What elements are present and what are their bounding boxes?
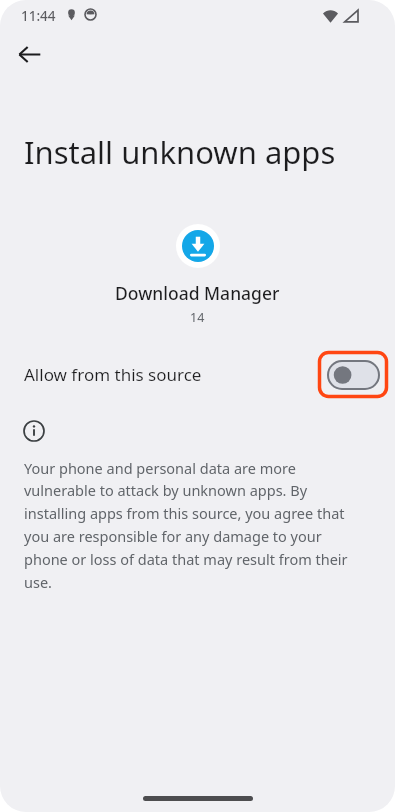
staticText: 14 [190,309,205,326]
button[interactable]: Allow from this source [0,348,395,400]
staticText: 11:44 [21,7,56,25]
staticText: Install unknown apps [24,131,336,173]
staticText: Your phone and personal data are more vu… [24,458,364,592]
button[interactable]: Allow from this source toggle [327,360,380,390]
button[interactable]: Back [8,33,50,75]
staticText: Download Manager [115,281,280,305]
staticText: Allow from this source [24,363,202,386]
